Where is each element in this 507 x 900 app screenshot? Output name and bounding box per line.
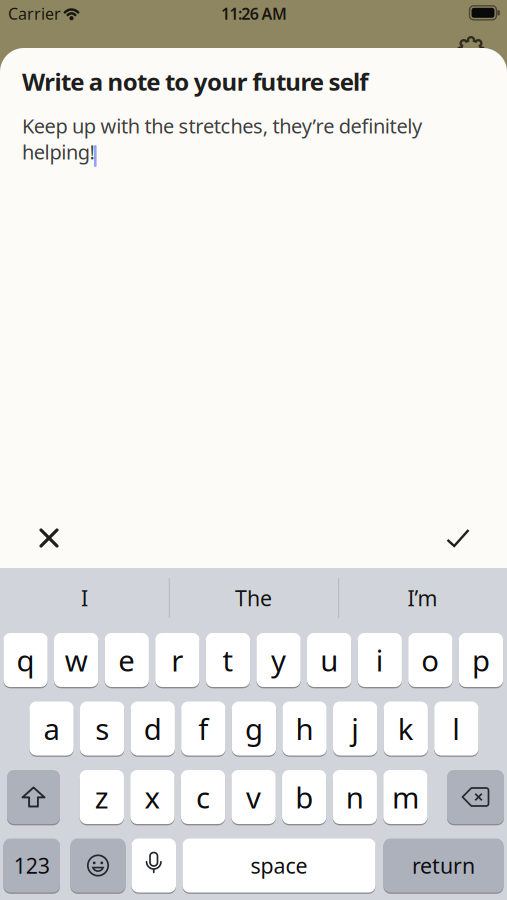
button[interactable]: c xyxy=(181,769,225,825)
button[interactable]: v xyxy=(231,769,276,825)
button[interactable]: g xyxy=(232,700,276,756)
button[interactable]: s xyxy=(80,700,124,756)
staticText: return xyxy=(412,851,475,880)
staticText: j xyxy=(351,709,359,748)
button[interactable]: The xyxy=(173,573,333,623)
button[interactable]: i xyxy=(358,632,402,688)
staticText: I xyxy=(81,584,88,612)
staticText: I’m xyxy=(407,584,437,612)
button[interactable]: I xyxy=(4,573,164,623)
button[interactable]: w xyxy=(54,632,98,688)
button[interactable]: z xyxy=(80,769,124,825)
staticText: Carrier xyxy=(8,3,61,24)
button[interactable]: q xyxy=(3,632,48,688)
staticText: Keep up with the stretches, they’re defi… xyxy=(22,112,422,139)
staticText: y xyxy=(271,640,286,679)
staticText: helping! xyxy=(22,138,95,165)
button[interactable] xyxy=(7,769,60,825)
button[interactable] xyxy=(447,530,468,546)
button[interactable] xyxy=(447,769,504,825)
button[interactable]: h xyxy=(282,700,327,756)
button[interactable]: p xyxy=(459,632,503,688)
button[interactable]: space xyxy=(182,837,375,893)
staticText: i xyxy=(376,640,384,679)
button[interactable]: m xyxy=(383,769,427,825)
staticText: The xyxy=(235,584,272,612)
button[interactable]: l xyxy=(434,700,478,756)
staticText: 123 xyxy=(14,851,50,880)
button[interactable]: e xyxy=(105,632,149,688)
button[interactable]: 123 xyxy=(3,837,60,893)
staticText: g xyxy=(245,709,263,748)
staticText: d xyxy=(144,709,162,748)
staticText: z xyxy=(95,777,109,816)
staticText: x xyxy=(144,777,160,816)
button[interactable]: return xyxy=(383,837,503,893)
staticText: w xyxy=(65,640,88,679)
button[interactable]: u xyxy=(307,632,351,688)
staticText: a xyxy=(43,709,59,748)
staticText: Write a note to your future self xyxy=(22,65,368,97)
button[interactable] xyxy=(70,837,125,893)
staticText: o xyxy=(421,640,439,679)
staticText: n xyxy=(346,777,364,816)
staticText: t xyxy=(222,640,233,679)
button[interactable]: I’m xyxy=(342,573,502,623)
button[interactable]: x xyxy=(130,769,174,825)
staticText: c xyxy=(196,777,210,816)
staticText: r xyxy=(171,640,183,679)
staticText: v xyxy=(246,777,261,816)
staticText: l xyxy=(452,709,460,748)
staticText: 11:26 AM xyxy=(221,3,287,24)
button[interactable]: t xyxy=(206,632,250,688)
button[interactable]: b xyxy=(282,769,326,825)
staticText: u xyxy=(320,640,338,679)
staticText: k xyxy=(398,709,414,748)
staticText: p xyxy=(472,640,490,679)
button[interactable]: y xyxy=(256,632,301,688)
button[interactable] xyxy=(456,35,486,65)
button[interactable]: d xyxy=(131,700,175,756)
button[interactable] xyxy=(131,837,176,893)
button[interactable]: o xyxy=(408,632,452,688)
button[interactable]: j xyxy=(333,700,377,756)
staticText: m xyxy=(392,777,419,816)
staticText: q xyxy=(17,640,35,679)
staticText: space xyxy=(250,851,307,880)
button[interactable]: n xyxy=(333,769,377,825)
staticText: b xyxy=(295,777,313,816)
button[interactable]: a xyxy=(29,700,74,756)
button[interactable] xyxy=(41,530,57,546)
staticText: h xyxy=(296,709,314,748)
staticText: f xyxy=(198,709,208,748)
staticText: e xyxy=(118,640,135,679)
button[interactable]: f xyxy=(181,700,225,756)
button[interactable]: k xyxy=(384,700,428,756)
staticText: s xyxy=(95,709,109,748)
button[interactable]: r xyxy=(155,632,199,688)
